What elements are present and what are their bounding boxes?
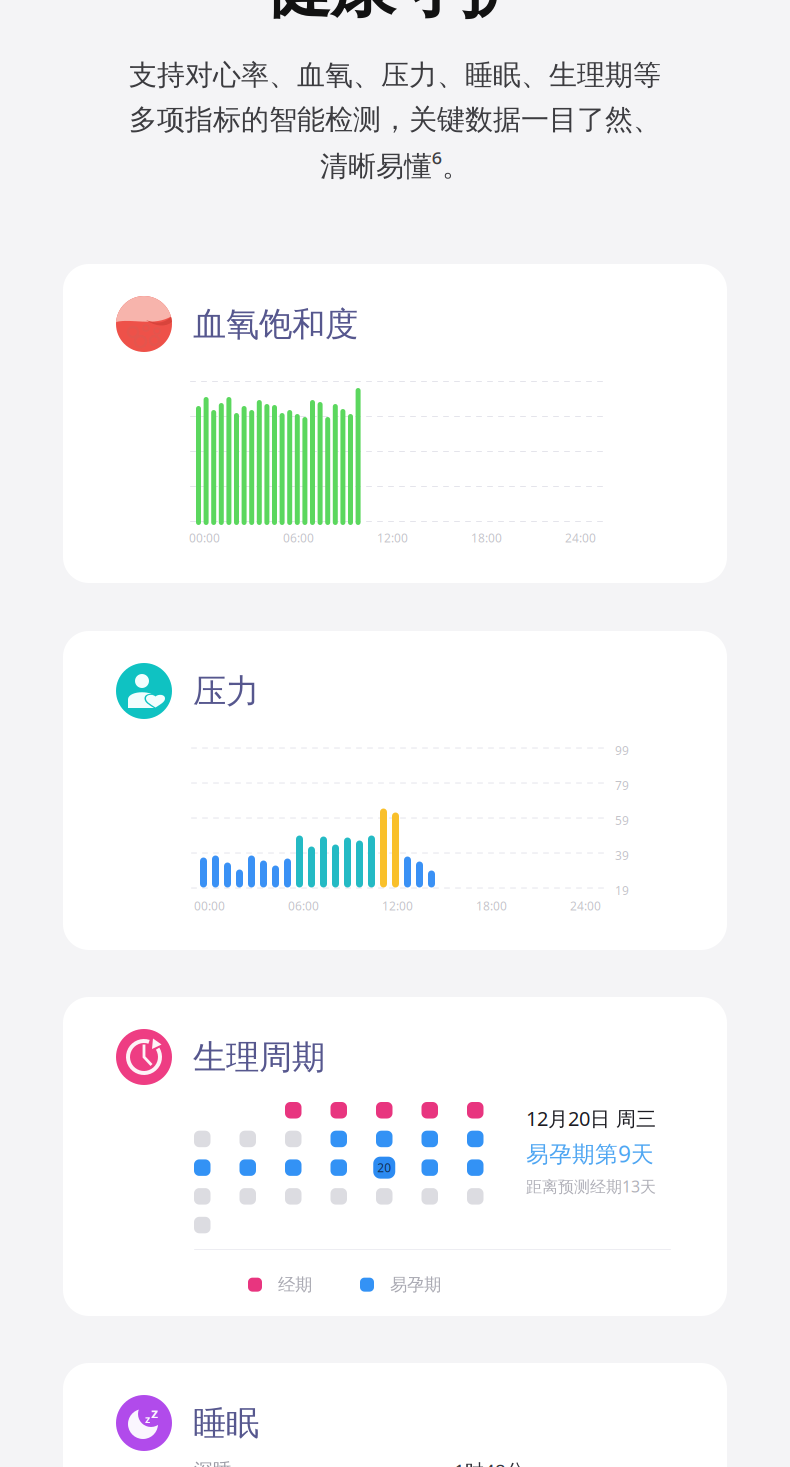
staticText: 99: [615, 742, 629, 758]
staticText: 20: [377, 1160, 391, 1176]
staticText: 79: [615, 777, 629, 793]
staticText: 18:00: [471, 530, 502, 546]
staticText: 06:00: [283, 530, 314, 546]
staticText: 00:00: [189, 530, 220, 546]
staticText: 多项指标的智能检测，关键数据一目了然、: [129, 102, 661, 137]
staticText: 压力: [193, 671, 259, 712]
staticText: 支持对心率、血氧、压力、睡眠、生理期等: [129, 58, 661, 92]
staticText: z: [151, 1403, 158, 1422]
staticText: 血氧饱和度: [193, 304, 358, 345]
staticText: 距离预测经期13天: [526, 1176, 656, 1197]
staticText: 生理周期: [193, 1037, 325, 1078]
staticText: 59: [615, 812, 629, 828]
staticText: 深睡: [194, 1459, 232, 1467]
staticText: 健康守护: [265, 0, 525, 28]
staticText: z: [145, 1412, 150, 1426]
staticText: 1时48分: [454, 1458, 525, 1467]
staticText: 经期: [278, 1274, 312, 1295]
staticText: 19: [615, 882, 629, 898]
staticText: 24:00: [565, 530, 596, 546]
staticText: 18:00: [476, 898, 507, 914]
staticText: 12:00: [377, 530, 408, 546]
staticText: 24:00: [570, 898, 601, 914]
staticText: 39: [615, 847, 629, 863]
staticText: 06:00: [288, 898, 319, 914]
staticText: 睡眠: [193, 1403, 259, 1444]
staticText: 00:00: [194, 898, 225, 914]
staticText: 12:00: [382, 898, 413, 914]
staticText: 12月20日 周三: [526, 1105, 656, 1132]
staticText: 清晰易懂⁶。: [320, 147, 470, 184]
staticText: 易孕期第9天: [526, 1139, 654, 1169]
staticText: 易孕期: [390, 1274, 441, 1295]
